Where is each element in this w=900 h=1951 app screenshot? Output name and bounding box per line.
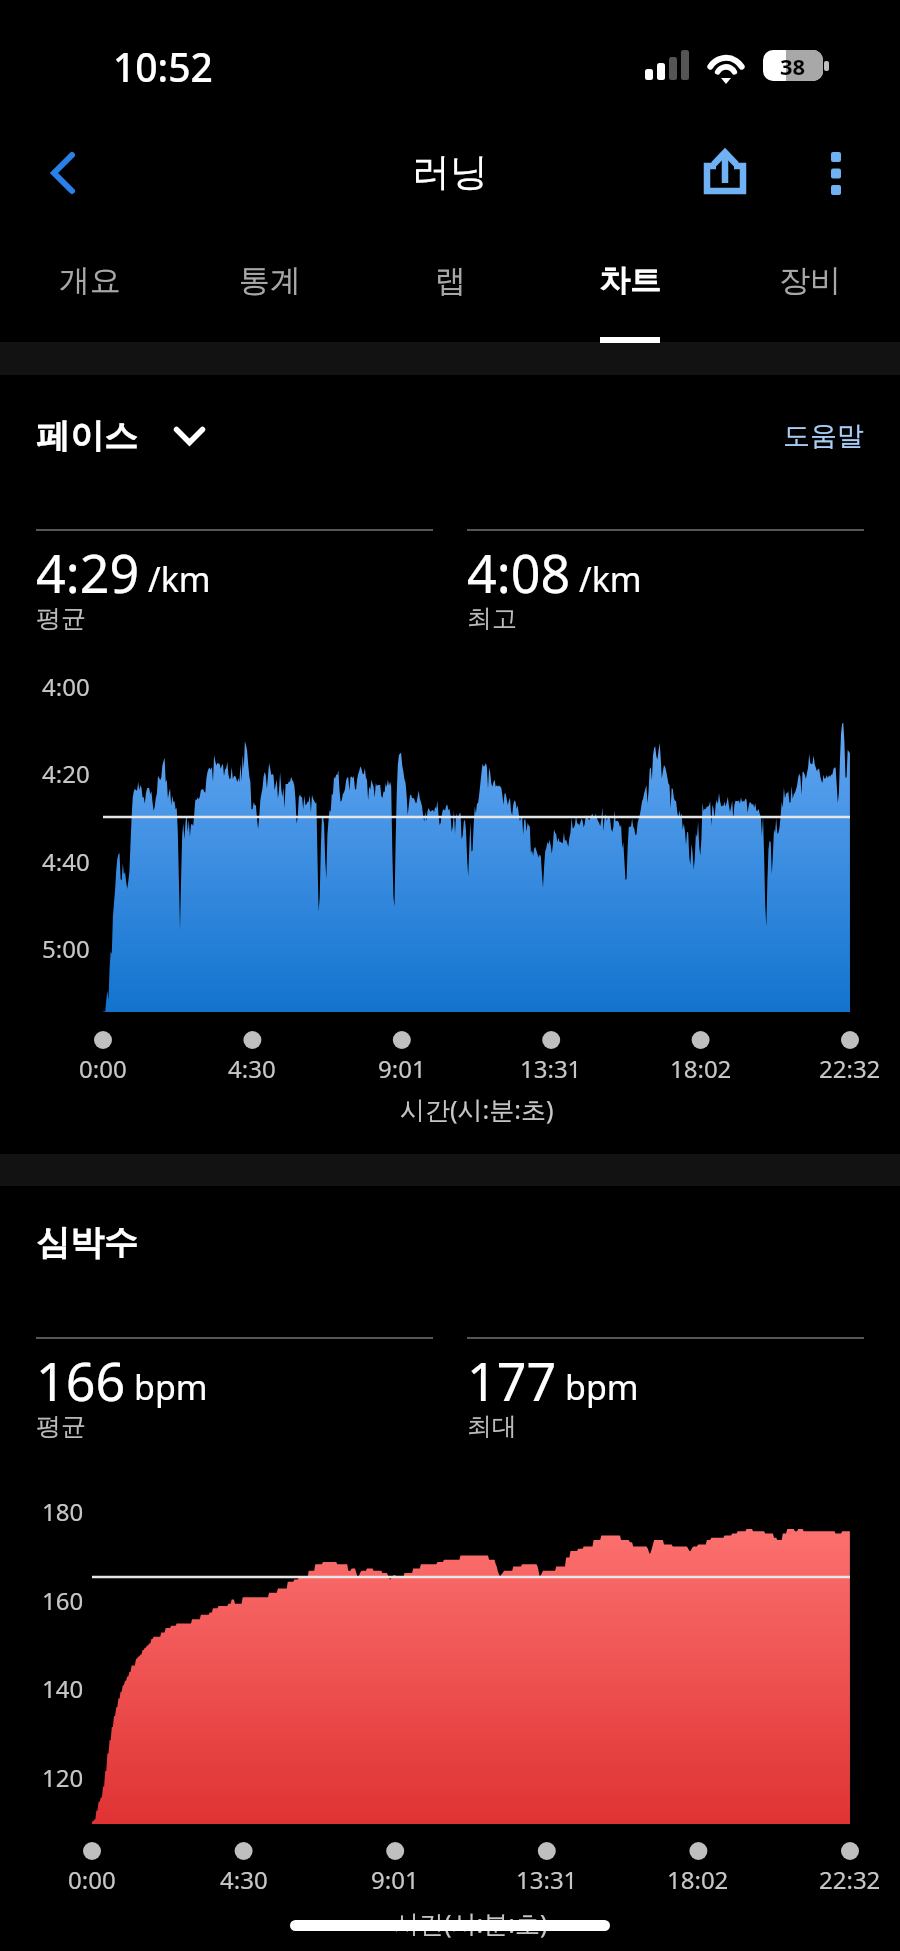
staticText: 시간(시:분:초) <box>400 1092 554 1126</box>
button[interactable]: 도움말 <box>795 408 876 464</box>
staticText: 랩 <box>435 261 466 300</box>
staticText: 통계 <box>239 261 301 300</box>
staticText: 4:20 <box>42 757 90 790</box>
staticText: 22:32 <box>819 1052 881 1085</box>
staticText: 최고 <box>467 603 517 634</box>
button[interactable]: 통계 <box>180 230 360 342</box>
staticText: 9:01 <box>371 1863 419 1896</box>
staticText: 심박수 <box>36 1221 138 1264</box>
staticText: 0:00 <box>79 1052 127 1085</box>
staticText: 4:30 <box>228 1052 276 1085</box>
button[interactable]: Share <box>678 120 774 230</box>
staticText: 18:02 <box>667 1863 729 1896</box>
button[interactable]: More options <box>788 120 884 230</box>
staticText: 10:52 <box>113 40 213 93</box>
staticText: /km <box>148 556 211 602</box>
staticText: 최대 <box>467 1411 517 1442</box>
staticText: bpm <box>134 1364 208 1410</box>
staticText: 140 <box>42 1672 84 1705</box>
button[interactable]: 장비 <box>720 230 900 342</box>
staticText: 페이스 <box>36 415 138 458</box>
staticText: 5:00 <box>42 932 90 965</box>
staticText: 18:02 <box>670 1052 732 1085</box>
button[interactable]: 페이스 <box>36 405 205 467</box>
staticText: 평균 <box>36 603 86 634</box>
staticText: 4:08 <box>467 537 571 608</box>
staticText: 4:00 <box>42 670 90 703</box>
staticText: 4:40 <box>42 845 90 878</box>
staticText: 13:31 <box>520 1052 582 1085</box>
staticText: 22:32 <box>819 1863 881 1896</box>
staticText: 38 <box>780 51 806 81</box>
staticText: 13:31 <box>516 1863 578 1896</box>
staticText: 장비 <box>779 261 841 300</box>
button[interactable]: 랩 <box>360 230 540 342</box>
staticText: 도움말 <box>783 419 864 453</box>
staticText: bpm <box>565 1364 639 1410</box>
staticText: 177 <box>467 1345 557 1416</box>
staticText: 개요 <box>59 261 121 300</box>
staticText: 시간(시:분:초) <box>394 1906 548 1940</box>
staticText: 9:01 <box>378 1052 426 1085</box>
button[interactable]: Back <box>14 120 110 230</box>
staticText: 러닝 <box>412 148 488 196</box>
staticText: 차트 <box>599 261 661 300</box>
staticText: 120 <box>42 1761 84 1794</box>
staticText: 180 <box>42 1495 84 1528</box>
staticText: 166 <box>36 1345 126 1416</box>
staticText: 4:30 <box>220 1863 268 1896</box>
staticText: 160 <box>42 1584 84 1617</box>
button[interactable]: 개요 <box>0 230 180 342</box>
staticText: 4:29 <box>36 537 140 608</box>
staticText: 평균 <box>36 1411 86 1442</box>
button[interactable]: 차트 <box>540 230 720 342</box>
staticText: 0:00 <box>68 1863 116 1896</box>
staticText: /km <box>579 556 642 602</box>
